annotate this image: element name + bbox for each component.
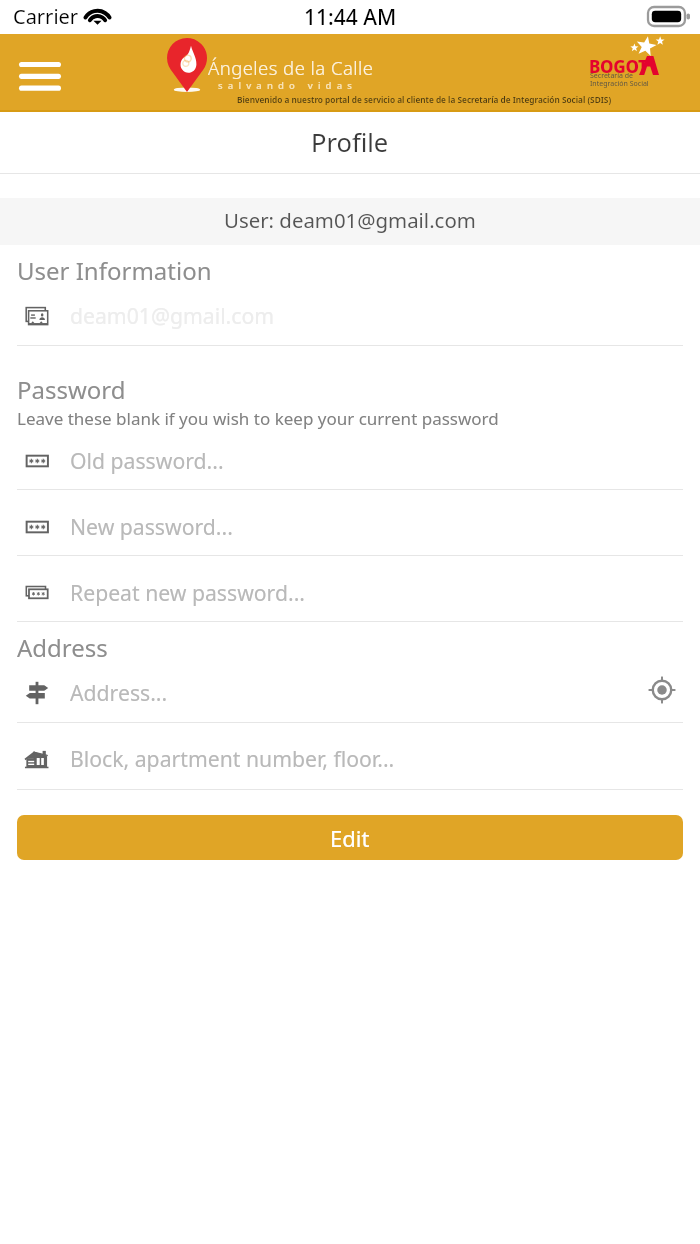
- staticText: Password: [17, 373, 126, 406]
- button[interactable]: Menu: [8, 54, 72, 98]
- button[interactable]: [17, 555, 683, 621]
- staticText: 11:44 AM: [304, 3, 397, 32]
- staticText: Edit: [330, 823, 370, 853]
- staticText: Carrier: [13, 3, 79, 30]
- staticText: Block, apartment number, floor...: [70, 744, 395, 773]
- staticText: deam01@gmail.com: [70, 301, 275, 330]
- staticText: Old password...: [70, 446, 224, 475]
- button[interactable]: [17, 279, 683, 345]
- staticText: Secretaría de Integración Social: [590, 71, 649, 88]
- staticText: Leave these blank if you wish to keep yo…: [17, 407, 499, 430]
- button[interactable]: [17, 423, 683, 489]
- button[interactable]: [17, 656, 683, 722]
- button[interactable]: [17, 489, 683, 555]
- staticText: User Information: [17, 254, 212, 287]
- staticText: Ángeles de la Calle: [208, 55, 374, 80]
- staticText: User: deam01@gmail.com: [224, 206, 476, 234]
- staticText: Address: [17, 631, 108, 664]
- button[interactable]: Use current location: [642, 670, 682, 710]
- staticText: BOGOT: [589, 55, 648, 78]
- staticText: Address...: [70, 678, 168, 707]
- staticText: Bienvenido a nuestro portal de servicio …: [237, 94, 612, 105]
- button[interactable]: Edit: [17, 815, 683, 860]
- staticText: s a l v a n d o v i d a s: [218, 79, 354, 92]
- button[interactable]: [17, 722, 683, 788]
- staticText: New password...: [70, 512, 233, 541]
- staticText: Profile: [311, 125, 389, 160]
- staticText: Repeat new password...: [70, 578, 306, 607]
